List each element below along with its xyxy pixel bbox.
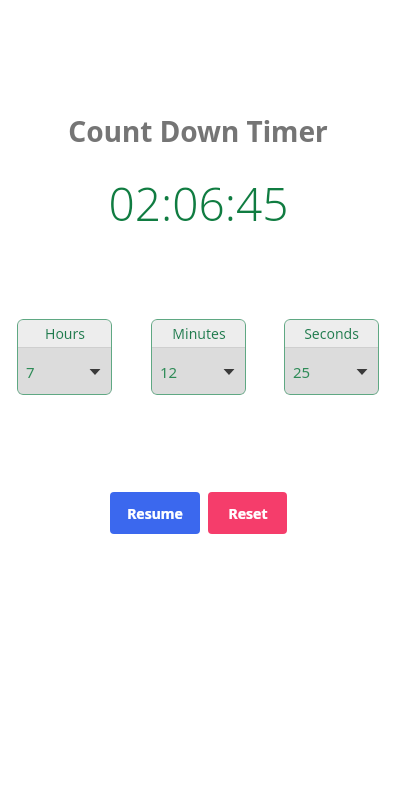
- staticText: 7: [26, 362, 35, 382]
- other: Open Hours dropdown: [88, 365, 102, 379]
- button[interactable]: Minutes: [151, 319, 246, 395]
- other: Open Seconds dropdown: [355, 365, 369, 379]
- staticText: Reset: [228, 504, 268, 523]
- staticText: 25: [293, 362, 311, 382]
- staticText: Seconds: [304, 324, 359, 343]
- button[interactable]: Hours: [17, 319, 112, 395]
- staticText: Minutes: [172, 324, 226, 343]
- staticText: 02:06:45: [108, 172, 289, 235]
- button[interactable]: Seconds: [284, 319, 379, 395]
- staticText: Hours: [45, 324, 85, 343]
- staticText: Count Down Timer: [68, 112, 328, 150]
- button[interactable]: Reset: [208, 492, 287, 534]
- other: Open Minutes dropdown: [222, 365, 236, 379]
- button[interactable]: Resume: [110, 492, 200, 534]
- staticText: Resume: [127, 504, 183, 523]
- staticText: 12: [160, 362, 178, 382]
